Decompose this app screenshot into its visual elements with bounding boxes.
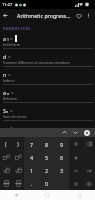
staticText: 7: [30, 141, 34, 148]
button[interactable]: Home: [31, 190, 63, 200]
staticText: a: [3, 89, 7, 96]
staticText: n: [3, 71, 7, 78]
button[interactable]: More options: [84, 9, 93, 22]
button[interactable]: d: [0, 49, 95, 67]
button[interactable]: ): [12, 137, 24, 151]
button[interactable]: Square root: [0, 164, 12, 177]
staticText: 4: [30, 154, 34, 161]
button[interactable]: Next field: [70, 128, 81, 137]
button[interactable]: Plus: [69, 151, 82, 164]
button[interactable]: .: [24, 177, 39, 190]
staticText: Sum of n terms: [3, 115, 27, 119]
button[interactable]: Mixed fraction: [12, 177, 24, 190]
staticText: 1: [7, 37, 9, 42]
button[interactable]: Power: [0, 151, 12, 164]
staticText: =: [8, 54, 11, 60]
staticText: Nth term: [3, 97, 17, 101]
staticText: n: [6, 109, 9, 114]
button[interactable]: Previous field: [59, 128, 70, 137]
button[interactable]: S: [0, 103, 95, 121]
staticText: 1: [30, 167, 34, 174]
button[interactable]: Backspace: [82, 137, 95, 151]
button[interactable]: Fraction: [0, 177, 12, 190]
button[interactable]: (: [0, 137, 12, 151]
staticText: n: [7, 91, 10, 96]
staticText: 2: [45, 167, 49, 174]
staticText: 9: [60, 141, 64, 148]
staticText: 0: [45, 180, 49, 187]
staticText: a: [3, 35, 7, 42]
button[interactable]: Divide: [69, 137, 82, 151]
button[interactable]: 1: [24, 164, 39, 177]
staticText: ): [17, 140, 19, 148]
staticText: PARAMETERS: [3, 26, 31, 31]
button[interactable]: Next: [82, 164, 95, 177]
button[interactable]: Nth root: [12, 164, 24, 177]
button[interactable]: Recent apps: [63, 190, 95, 200]
staticText: (: [5, 140, 7, 148]
staticText: =: [10, 125, 13, 128]
button[interactable]: Minus: [69, 164, 82, 177]
button[interactable]: a: [0, 31, 95, 49]
button[interactable]: 4: [24, 151, 39, 164]
button[interactable]: 7: [24, 137, 39, 151]
staticText: Arithmetic progress...: [17, 12, 74, 19]
staticText: =: [10, 108, 13, 114]
staticText: =: [11, 90, 14, 96]
staticText: S: [3, 107, 6, 114]
button[interactable]: Multiply: [69, 177, 82, 190]
button[interactable]: Power n: [12, 151, 24, 164]
staticText: Initial term: [3, 43, 20, 47]
staticText: 11:27: [2, 2, 13, 7]
staticText: =: [8, 72, 11, 78]
button[interactable]: a: [0, 85, 95, 103]
staticText: =: [10, 36, 13, 42]
button[interactable]: 3: [54, 164, 69, 177]
button[interactable]: Close keyboard: [81, 128, 92, 137]
button[interactable]: 6: [54, 151, 69, 164]
staticText: 8: [45, 141, 49, 148]
staticText: Index n: [3, 79, 15, 83]
button[interactable]: 5: [39, 151, 54, 164]
button[interactable]: Preview: [82, 177, 95, 190]
button[interactable]: 0: [39, 177, 54, 190]
button[interactable]: 9: [54, 137, 69, 151]
staticText: .: [31, 180, 33, 187]
button[interactable]: 8: [39, 137, 54, 151]
staticText: 6: [60, 154, 64, 161]
staticText: d: [3, 53, 7, 60]
staticText: 3: [60, 167, 64, 174]
button[interactable]: 2: [39, 164, 54, 177]
button[interactable]: Back: [0, 190, 31, 200]
staticText: 5: [45, 154, 49, 161]
button[interactable]: n: [0, 67, 95, 85]
staticText: Common difference of successive members: [3, 61, 70, 65]
button[interactable]: Back: [0, 9, 10, 22]
button[interactable]: Favorite: [74, 9, 84, 22]
